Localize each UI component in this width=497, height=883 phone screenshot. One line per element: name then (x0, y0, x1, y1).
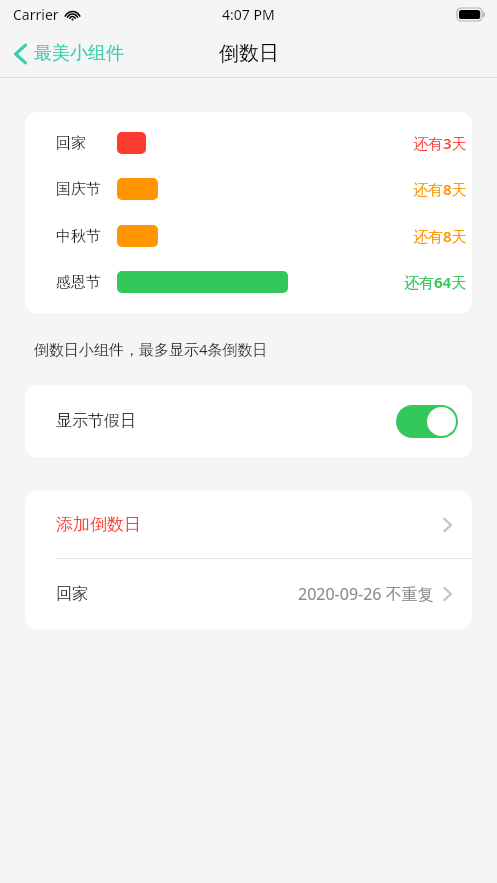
staticText: 还有64天 (404, 272, 467, 292)
staticText: 还有8天 (413, 179, 467, 199)
staticText: 回家 (56, 134, 86, 153)
staticText: 国庆节 (56, 180, 101, 199)
button[interactable]: 显示节假日 (25, 385, 472, 457)
staticText: 还有8天 (413, 226, 467, 246)
button[interactable]: 回家 (25, 559, 472, 629)
staticText: 添加倒数日 (56, 514, 141, 535)
staticText: 4:07 PM (222, 5, 275, 24)
staticText: 倒数日 (219, 41, 279, 66)
button[interactable]: Back (0, 36, 134, 71)
other: Show holidays toggle (396, 405, 458, 438)
staticText: 2020-09-26 不重复 (298, 583, 434, 605)
staticText: Carrier (13, 5, 59, 24)
staticText: 感恩节 (56, 273, 101, 292)
staticText: 倒数日小组件，最多显示4条倒数日 (34, 339, 268, 359)
other: Back (14, 43, 27, 65)
button[interactable]: 添加倒数日 (25, 491, 472, 558)
staticText: 显示节假日 (56, 411, 136, 431)
staticText: 回家 (56, 584, 88, 604)
staticText: 还有3天 (413, 133, 467, 153)
staticText: 中秋节 (56, 227, 101, 246)
staticText: 最美小组件 (34, 42, 124, 65)
